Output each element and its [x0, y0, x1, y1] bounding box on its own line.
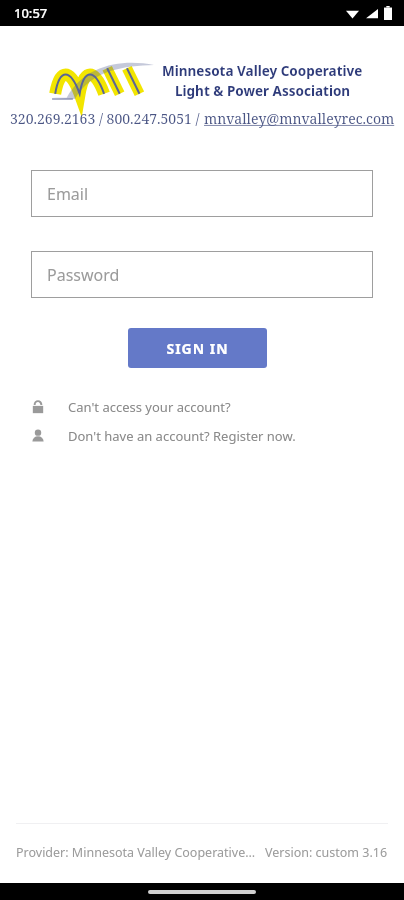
staticText: Version: custom 3.16 [265, 844, 388, 861]
button[interactable]: SIGN IN [128, 328, 267, 368]
button[interactable]: Password [31, 251, 373, 298]
staticText: 320.269.2163 / 800.247.5051 / [10, 109, 204, 128]
staticText: Light & Power Association [175, 82, 351, 100]
button[interactable]: Forgot password [31, 396, 373, 418]
other: Register [31, 429, 45, 443]
staticText: mnvalley@mnvalleyrec.com [204, 109, 395, 128]
staticText: Minnesota Valley Cooperative [162, 62, 363, 80]
button[interactable]: Register [31, 425, 373, 447]
other: Forgot password [31, 400, 45, 414]
staticText: Email [47, 183, 89, 205]
staticText: Don't have an account? Register now. [68, 427, 296, 445]
staticText: SIGN IN [166, 339, 229, 358]
staticText: Provider: Minnesota Valley Cooperative… [16, 844, 256, 861]
staticText: Password [47, 264, 120, 286]
staticText: Can't access your account? [68, 398, 231, 416]
staticText: 10:57 [14, 4, 48, 22]
button[interactable]: Email [31, 170, 373, 217]
